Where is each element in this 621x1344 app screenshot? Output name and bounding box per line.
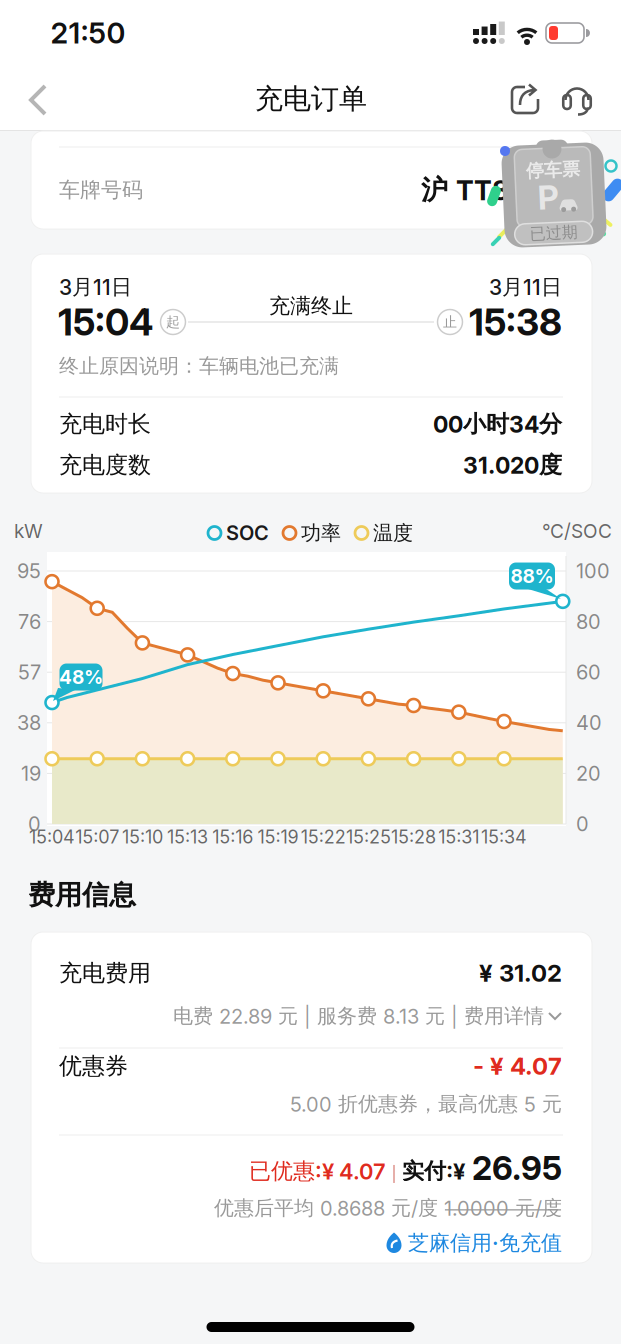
staticText: 15:34 [481,826,527,848]
staticText: - ¥ 4.07 [473,1051,562,1080]
staticText: 0 [28,812,41,836]
staticText: 19 [21,761,41,785]
staticText: 15:04 [58,300,153,344]
staticText: 26.95 [472,1148,562,1188]
staticText: 15:31 [438,826,479,848]
staticText: 80 [576,609,601,634]
staticText: 温度 [373,520,413,546]
staticText: 沪 TT8D96 [421,173,562,207]
staticText: 100 [576,559,610,583]
staticText: 21:50 [50,15,125,51]
staticText: 38 [17,711,41,735]
staticText: 优惠券 [59,1051,128,1080]
staticText: 芝麻信用·免充值 [408,1230,562,1256]
staticText: P [537,177,558,217]
staticText: °C/SOC [542,519,612,542]
staticText: 费用信息 [28,878,136,912]
staticText: 终止原因说明：车辆电池已充满 [59,353,339,379]
staticText: 60 [576,660,601,684]
staticText: 15:38 [469,300,562,344]
staticText: 功率 [301,520,341,546]
staticText: 止 [443,313,457,331]
button[interactable]: Back [18,78,62,122]
staticText: ¥ 31.02 [479,958,562,987]
staticText: 57 [18,660,41,684]
staticText: 充满终止 [269,293,353,319]
staticText: 5.00 折优惠券，最高优惠 5 元 [290,1091,562,1117]
staticText: 3月11日 [59,274,132,300]
button[interactable]: 电费 22.89 元 | 服务费 8.13 元 | 费用详情 [173,1003,562,1029]
button[interactable]: 芝麻信用·免充值 [385,1230,562,1256]
staticText: 15:04 [29,826,75,848]
staticText: 15:13 [167,826,208,848]
staticText: 充电时长 [59,409,151,438]
staticText: 48% [59,665,103,688]
button[interactable]: Share [505,78,545,118]
staticText: 76 [18,609,41,634]
staticText: 20 [576,761,601,785]
staticText: 优惠后平均 0.8688 元/度 [214,1195,444,1221]
staticText: 电费 22.89 元 | 服务费 8.13 元 | 费用详情 [173,1003,544,1029]
staticText: 停车票 [527,159,581,181]
button[interactable]: Support [557,78,597,118]
staticText: 已过期 [528,223,576,243]
staticText: 88% [510,564,553,587]
staticText: 实付:¥ [402,1157,465,1185]
staticText: 15:16 [212,826,253,848]
staticText: 95 [17,559,41,583]
staticText: 15:10 [122,826,163,848]
staticText: 充电度数 [59,450,151,479]
staticText: 充电费用 [59,958,151,987]
staticText: 15:07 [75,826,119,848]
staticText: 31.020度 [463,450,562,479]
staticText: 40 [576,711,602,735]
staticText: 15:22 [301,826,346,848]
staticText: 15:25 [346,826,391,848]
staticText: SOC [226,521,269,545]
staticText: 已优惠:¥ 4.07 [249,1157,386,1185]
staticText: 3月11日 [489,274,562,300]
staticText: 充电订单 [255,81,367,117]
staticText: 00小时34分 [433,409,562,438]
staticText: 车牌号码 [59,177,143,203]
staticText: 1.0000 元/度 [444,1195,562,1221]
staticText: kW [14,519,43,542]
staticText: 起 [166,313,180,331]
staticText: 15:19 [257,826,298,848]
staticText: 0 [576,812,589,836]
staticText: 15:28 [391,826,436,848]
